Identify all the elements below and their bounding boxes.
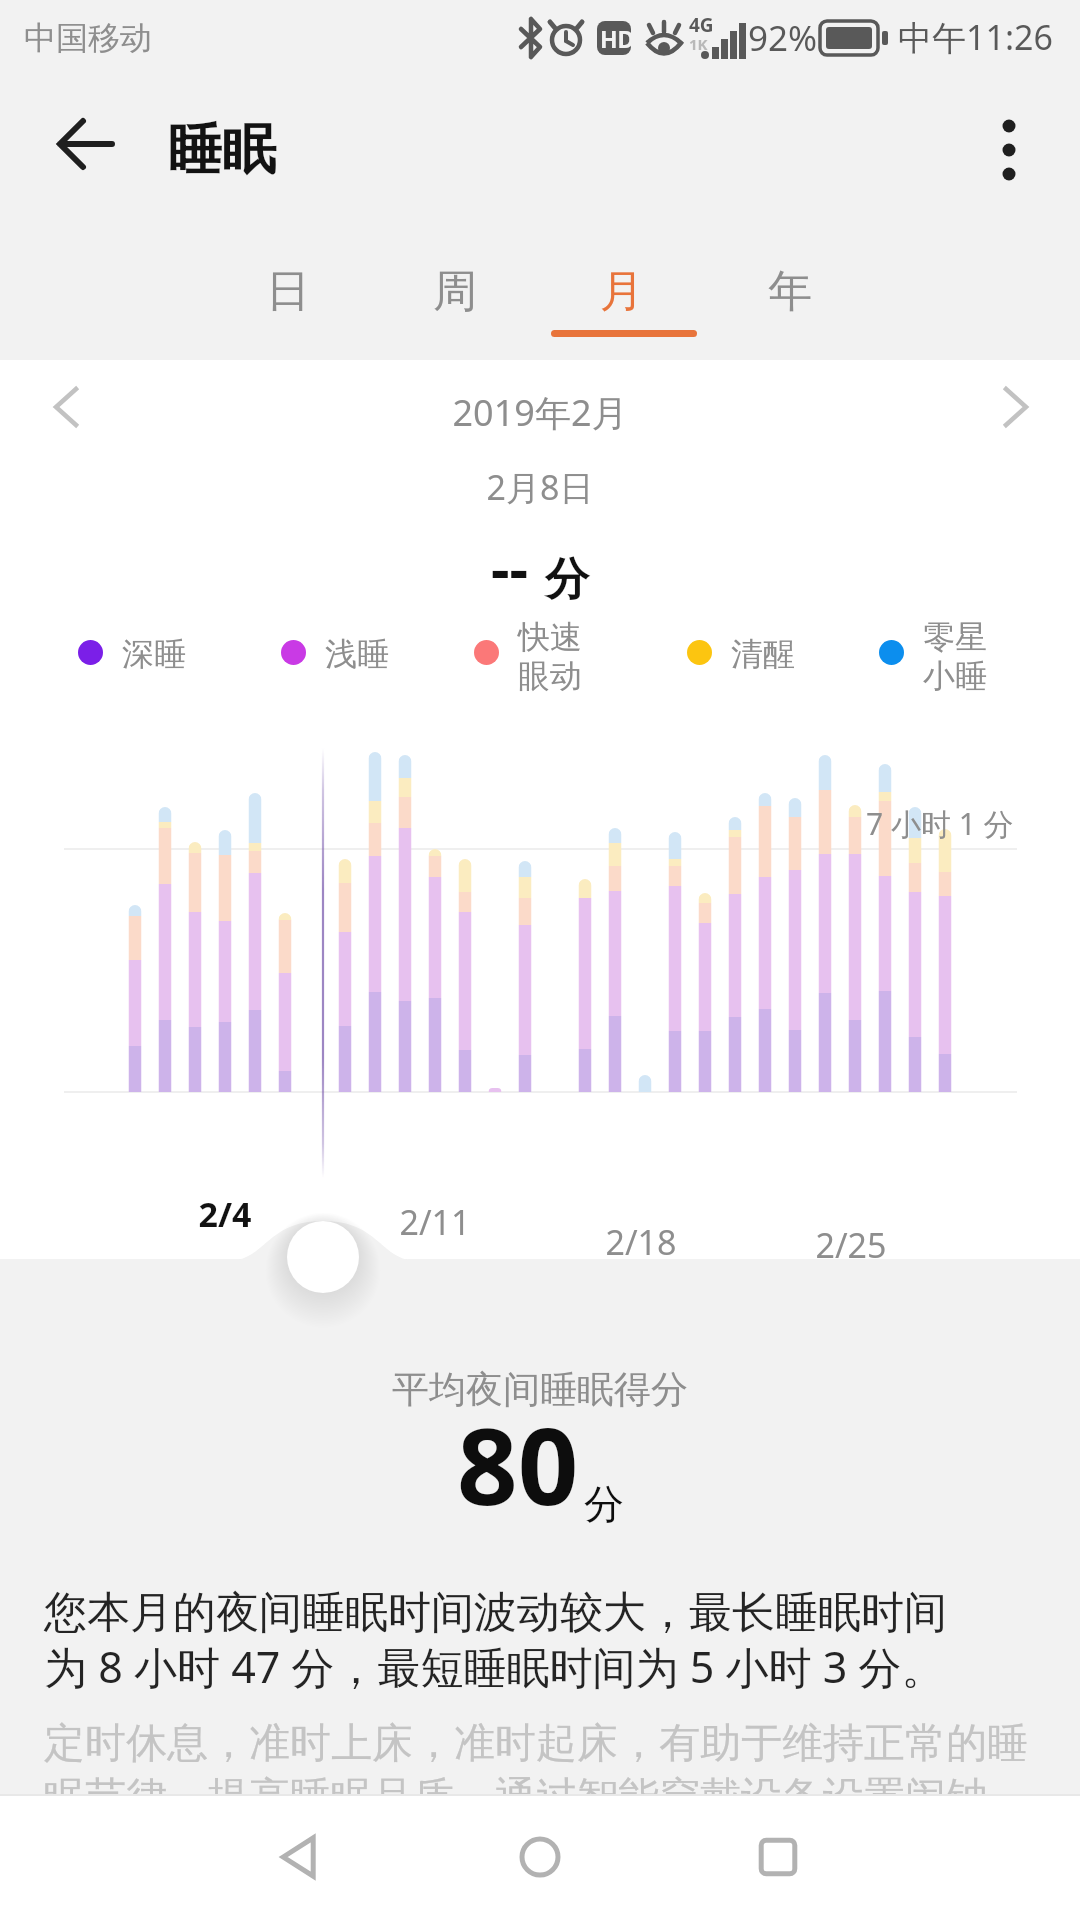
button[interactable]: Next month: [981, 372, 1051, 442]
staticText: 定时休息，准时上床，准时起床，有助于维持正常的睡眠节律，提高睡眠品质。通过智能穿…: [44, 1718, 1054, 1876]
staticText: 1K: [689, 34, 708, 54]
staticText: 月: [600, 264, 644, 319]
staticText: 中国移动: [24, 18, 152, 58]
staticText: HD: [600, 23, 635, 54]
staticText: 2月8日: [0, 464, 1080, 510]
button[interactable]: Back: [240, 1794, 360, 1920]
staticText: 眼动: [518, 656, 582, 696]
button[interactable]: Deep sleep: [66, 612, 196, 690]
staticText: 2019年2月: [0, 388, 1080, 437]
staticText: 您本月的夜间睡眠时间波动较大，最长睡眠时间为 8 小时 47 分，最短睡眠时间为…: [44, 1586, 986, 1695]
button[interactable]: Recent apps: [718, 1794, 838, 1920]
button[interactable]: More options: [968, 107, 1050, 189]
staticText: 年: [768, 264, 812, 319]
staticText: 7 小时 1 分: [866, 803, 1014, 844]
staticText: 92%: [748, 14, 818, 62]
staticText: 2/25: [801, 1222, 901, 1268]
staticText: 周: [433, 264, 477, 319]
button[interactable]: Back: [42, 107, 127, 192]
button[interactable]: REM: [462, 612, 592, 690]
staticText: 2/11: [385, 1199, 485, 1245]
staticText: 4G: [689, 12, 714, 38]
staticText: 2/18: [591, 1219, 691, 1265]
staticText: 平均夜间睡眠得分: [0, 1366, 1080, 1413]
button[interactable]: 月: [542, 217, 702, 360]
button[interactable]: Scroll handle: [287, 1222, 359, 1294]
staticText: 快速: [518, 617, 582, 657]
staticText: 浅睡: [325, 634, 389, 674]
button[interactable]: Awake: [675, 612, 805, 690]
button[interactable]: 日: [208, 217, 368, 360]
staticText: 清醒: [731, 634, 795, 674]
staticText: 深睡: [122, 634, 186, 674]
staticText: 80: [457, 1392, 579, 1536]
staticText: 日: [266, 264, 310, 319]
button[interactable]: 年: [710, 217, 870, 360]
staticText: --: [491, 528, 529, 607]
staticText: 零星: [923, 617, 987, 657]
staticText: 小睡: [923, 656, 987, 696]
button[interactable]: 周: [375, 217, 535, 360]
staticText: 中午11:26: [898, 14, 1053, 60]
staticText: 2/4: [175, 1191, 275, 1237]
button[interactable]: Naps: [867, 612, 997, 690]
button[interactable]: Previous month: [31, 372, 101, 442]
staticText: 睡眠: [168, 116, 276, 184]
staticText: 分: [545, 552, 589, 607]
staticText: 分: [584, 1479, 624, 1529]
button[interactable]: Home: [480, 1794, 600, 1920]
button[interactable]: Light sleep: [269, 612, 399, 690]
